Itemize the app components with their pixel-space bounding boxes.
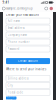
staticText: Email address xyxy=(7,26,24,30)
button[interactable]: Continue xyxy=(6,96,16,100)
staticText: Continue xyxy=(7,94,16,100)
staticText: Full name xyxy=(7,19,20,23)
staticText: example.com/signup xyxy=(6,7,33,10)
staticText: Where to send your invoices xyxy=(6,67,46,71)
button[interactable]: Share xyxy=(44,5,48,11)
button[interactable]: Create account xyxy=(6,58,50,64)
staticText: Create your new account xyxy=(6,13,39,17)
staticText: City xyxy=(7,84,12,87)
staticText: Postal code xyxy=(7,91,23,94)
staticText: Company name xyxy=(7,33,27,37)
staticText: Phone number xyxy=(7,40,29,44)
staticText: Billing address xyxy=(7,77,28,80)
staticText: Password xyxy=(7,47,19,51)
button[interactable]: Reload page xyxy=(1,5,6,11)
staticText: 9:41 xyxy=(2,1,9,4)
button[interactable]: Account xyxy=(48,5,54,11)
staticText: Create account xyxy=(18,59,38,63)
